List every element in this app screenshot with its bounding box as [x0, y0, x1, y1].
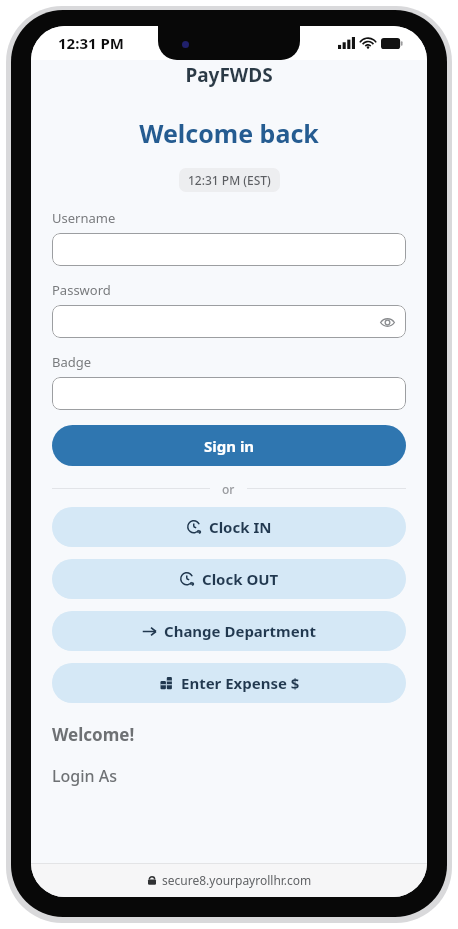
staticText: Login As — [52, 765, 118, 787]
button[interactable]: secure8.yourpayrollhr.com — [31, 863, 427, 897]
staticText: 12:31 PM — [58, 33, 124, 53]
staticText: Sign in — [204, 436, 255, 456]
staticText: PayFWDS — [31, 62, 427, 88]
button[interactable]: Show password — [52, 305, 406, 338]
staticText: Welcome back — [31, 116, 427, 150]
button[interactable]: Enter Expense $ — [52, 663, 406, 703]
staticText: Username — [52, 209, 116, 227]
staticText: or — [222, 481, 235, 495]
button[interactable]: Sign in — [52, 425, 406, 466]
staticText: secure8.yourpayrollhr.com — [162, 872, 312, 888]
staticText: Enter Expense $ — [181, 673, 300, 693]
button[interactable]: Change Department — [52, 611, 406, 651]
staticText: Change Department — [164, 621, 316, 641]
button[interactable]: Clock IN — [52, 507, 406, 547]
staticText: Clock IN — [209, 517, 272, 537]
button[interactable]: Clock OUT — [52, 559, 406, 599]
staticText: Clock OUT — [202, 569, 279, 589]
button[interactable]: Show password — [378, 313, 396, 331]
staticText: Password — [52, 281, 111, 299]
staticText: 12:31 PM (EST) — [188, 172, 271, 188]
staticText: Welcome! — [52, 723, 135, 746]
button[interactable] — [52, 233, 406, 266]
button[interactable] — [52, 377, 406, 410]
staticText: Badge — [52, 353, 92, 371]
